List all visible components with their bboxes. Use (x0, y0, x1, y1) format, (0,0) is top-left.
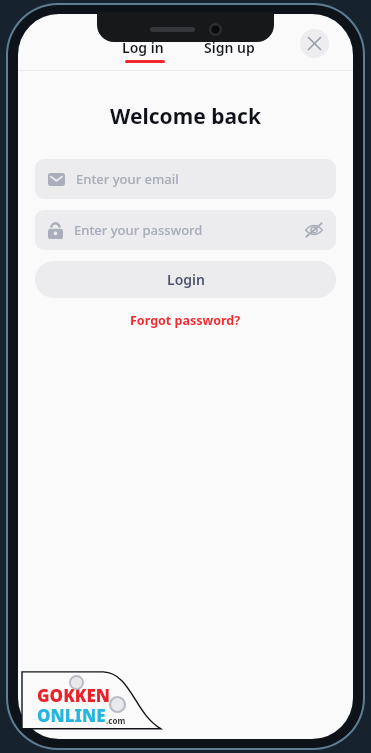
staticText: Enter your email (76, 170, 179, 188)
button[interactable]: Log in (105, 34, 181, 60)
staticText: GOKKEN (37, 684, 110, 707)
button[interactable]: Enter your password (35, 210, 336, 250)
staticText: Welcome back (18, 102, 353, 131)
staticText: Forgot password? (130, 312, 241, 329)
staticText: .com (106, 715, 126, 726)
staticText: Enter your password (74, 221, 203, 239)
button[interactable]: Enter your email (35, 159, 336, 199)
staticText: Log in (122, 38, 164, 57)
staticText: Login (167, 270, 205, 289)
button[interactable]: Sign up (191, 34, 267, 60)
button[interactable]: Show password (303, 219, 325, 241)
staticText: ONLINE (37, 704, 106, 727)
staticText: Sign up (204, 38, 255, 57)
button[interactable]: Close (300, 29, 329, 58)
button[interactable]: Login (35, 261, 336, 298)
button[interactable]: Forgot password? (18, 310, 353, 331)
